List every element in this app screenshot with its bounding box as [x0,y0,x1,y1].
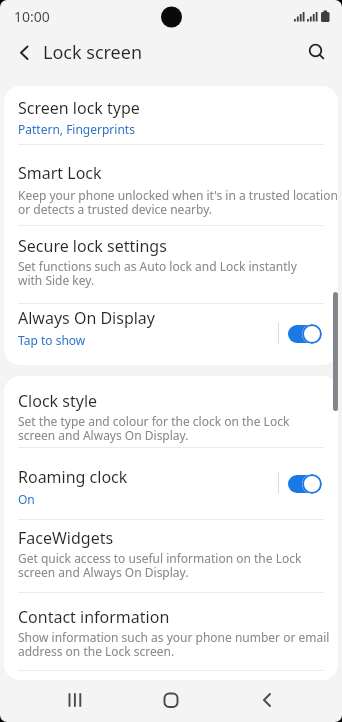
button[interactable] [4,447,338,519]
button[interactable] [4,225,338,303]
staticText: Smart Lock [18,162,102,184]
staticText: Keep your phone unlocked when it's in a … [18,187,338,217]
staticText: Pattern, Fingerprints [18,121,135,137]
button[interactable] [55,682,95,722]
staticText: Set the type and colour for the clock on… [18,413,290,443]
staticText: FaceWidgets [18,527,114,549]
staticText: Clock style [18,390,98,412]
staticText: Set functions such as Auto lock and Lock… [18,258,297,288]
button[interactable] [4,376,338,447]
staticText: Always On Display [18,307,156,329]
button[interactable] [10,39,38,67]
staticText: Roaming clock [18,466,128,488]
button[interactable] [247,682,287,722]
button[interactable] [151,682,191,722]
staticText: Get quick access to useful information o… [18,550,302,580]
button[interactable] [4,303,338,365]
button[interactable] [4,519,338,592]
staticText: 10:00 [14,7,50,26]
staticText: Tap to show [18,332,86,348]
button[interactable] [302,38,330,66]
staticText: Lock screen [43,40,143,65]
button[interactable] [4,145,338,225]
staticText: Show information such as your phone numb… [18,629,330,659]
staticText: Contact information [18,606,170,628]
button[interactable] [4,86,338,145]
button[interactable] [4,592,338,670]
staticText: Screen lock type [18,97,140,119]
staticText: On [18,491,35,507]
staticText: Secure lock settings [18,235,167,257]
